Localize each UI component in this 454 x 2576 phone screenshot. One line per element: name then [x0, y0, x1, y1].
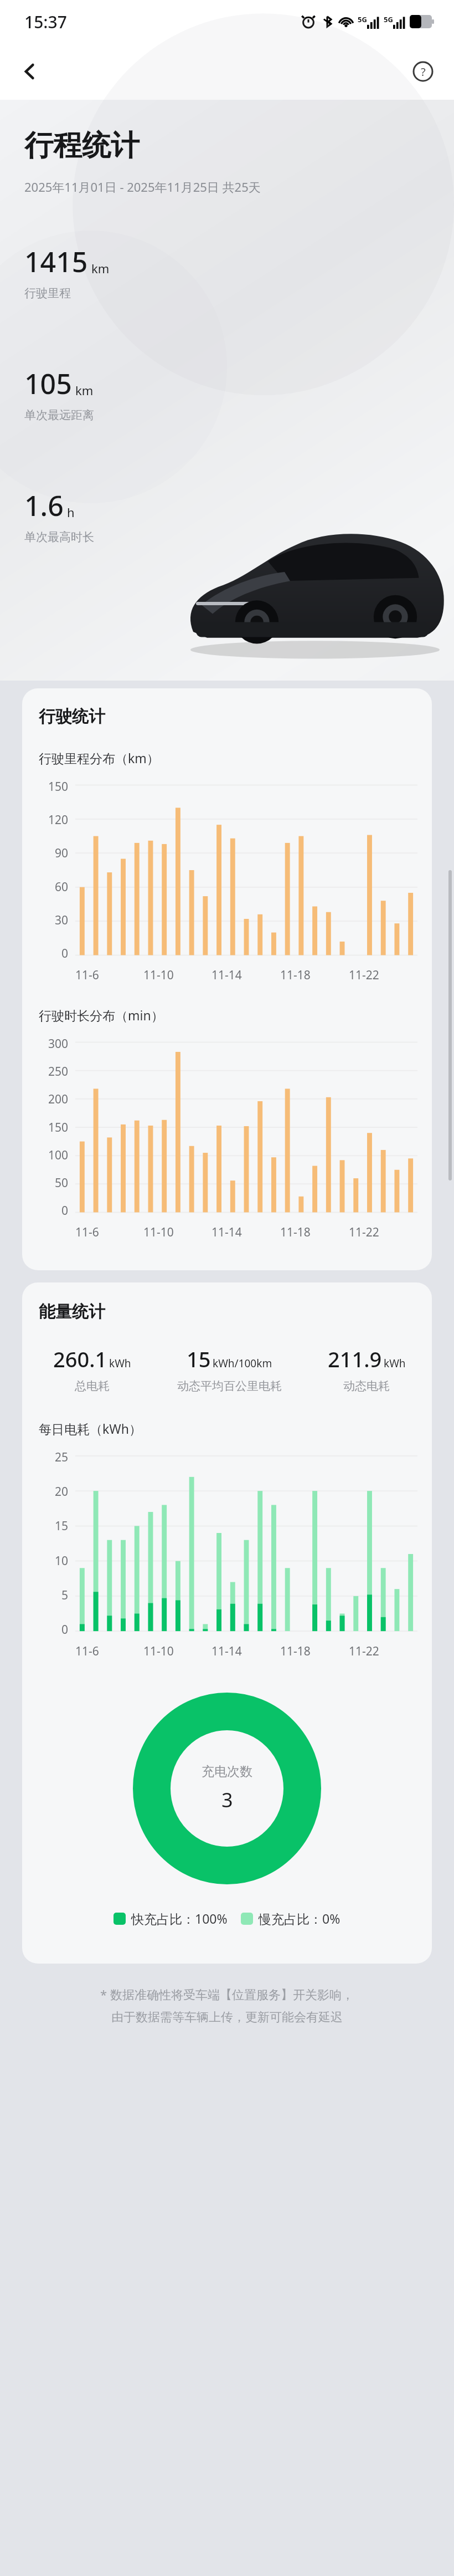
- staticText: 20: [55, 1484, 69, 1500]
- staticText: 5: [61, 1587, 69, 1603]
- staticText: 3: [221, 1786, 233, 1813]
- staticText: 总电耗: [75, 1379, 110, 1393]
- staticText: 250: [48, 1064, 69, 1080]
- staticText: 15: [187, 1345, 211, 1373]
- staticText: 60: [55, 879, 69, 895]
- staticText: kWh: [384, 1356, 406, 1371]
- staticText: 150: [48, 779, 69, 795]
- staticText: 5G: [358, 14, 367, 24]
- staticText: 11-10: [143, 967, 174, 983]
- staticText: 11-14: [211, 1643, 242, 1659]
- staticText: 5G: [384, 14, 393, 24]
- staticText: 1415: [24, 243, 88, 280]
- staticText: 90: [55, 845, 69, 861]
- staticText: 每日电耗（kWh）: [39, 1420, 142, 1437]
- button[interactable]: 行驶统计: [22, 688, 432, 1270]
- staticText: kWh: [109, 1356, 131, 1371]
- staticText: 150: [48, 1120, 69, 1136]
- staticText: h: [67, 504, 75, 520]
- staticText: 11-14: [211, 967, 242, 983]
- staticText: 15:37: [24, 11, 67, 33]
- staticText: 行驶里程分布（km）: [39, 749, 159, 766]
- staticText: 11-6: [75, 967, 99, 983]
- staticText: 11-22: [349, 967, 379, 983]
- staticText: 25: [55, 1449, 69, 1465]
- staticText: km: [91, 260, 110, 277]
- staticText: 充电次数: [202, 1764, 252, 1780]
- staticText: 0: [61, 945, 69, 962]
- staticText: 行驶里程: [24, 286, 71, 300]
- staticText: 动态平均百公里电耗: [177, 1379, 282, 1393]
- staticText: 行驶统计: [39, 706, 105, 727]
- button[interactable]: 能量统计: [22, 1282, 432, 1964]
- staticText: 快充占比：100%: [131, 1910, 228, 1927]
- staticText: 211.9: [328, 1345, 382, 1373]
- staticText: 2025年11月01日 - 2025年11月25日 共25天: [24, 178, 261, 195]
- staticText: 慢充占比：0%: [259, 1910, 341, 1927]
- staticText: 能量统计: [39, 1301, 105, 1322]
- staticText: 行驶时长分布（min）: [39, 1006, 164, 1024]
- staticText: 单次最远距离: [24, 408, 94, 422]
- staticText: * 数据准确性将受车端【位置服务】开关影响， 由于数据需等车辆上传，更新可能会有…: [33, 1986, 421, 2025]
- staticText: 11-18: [280, 967, 311, 983]
- button[interactable]: Help: [405, 54, 441, 89]
- staticText: 50: [55, 1175, 69, 1191]
- staticText: 15: [55, 1518, 69, 1534]
- staticText: 11-6: [75, 1224, 99, 1240]
- staticText: 100: [48, 1147, 69, 1163]
- staticText: 11-18: [280, 1643, 311, 1659]
- staticText: 行程统计: [24, 127, 140, 164]
- button[interactable]: Back: [12, 54, 48, 89]
- staticText: 11-14: [211, 1224, 242, 1240]
- staticText: 0: [61, 1622, 69, 1638]
- staticText: 11-22: [349, 1224, 379, 1240]
- staticText: 11-18: [280, 1224, 311, 1240]
- staticText: kWh/100km: [213, 1356, 272, 1371]
- staticText: 动态电耗: [343, 1379, 390, 1393]
- staticText: 105: [24, 365, 72, 402]
- staticText: 120: [48, 812, 69, 828]
- staticText: 11-22: [349, 1643, 379, 1659]
- staticText: 11-10: [143, 1643, 174, 1659]
- staticText: 11-6: [75, 1643, 99, 1659]
- staticText: 11-10: [143, 1224, 174, 1240]
- staticText: 0: [61, 1203, 69, 1219]
- staticText: 200: [48, 1091, 69, 1107]
- staticText: 单次最高时长: [24, 530, 94, 544]
- staticText: km: [75, 382, 94, 398]
- staticText: 1.6: [24, 487, 64, 524]
- staticText: 30: [55, 912, 69, 928]
- staticText: 260.1: [53, 1345, 107, 1373]
- staticText: 10: [55, 1553, 69, 1569]
- staticText: 300: [48, 1036, 69, 1052]
- staticText: ?: [421, 64, 426, 79]
